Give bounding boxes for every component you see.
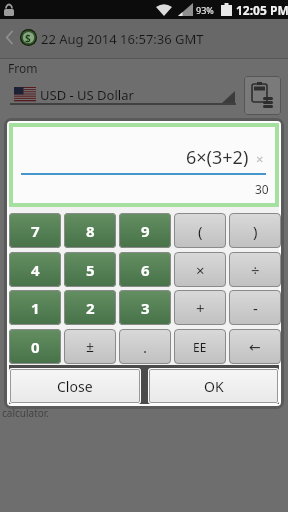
button[interactable]: ( — [174, 213, 226, 248]
button[interactable]: ± — [64, 329, 116, 364]
staticText: - — [253, 298, 258, 318]
button[interactable]: ← — [229, 329, 281, 364]
button[interactable]: Close — [9, 368, 141, 404]
staticText: 22 Aug 2014 16:57:36 GMT — [41, 30, 204, 48]
staticText: × — [196, 260, 205, 280]
staticText: OK — [204, 377, 224, 396]
staticText: ( — [198, 221, 203, 241]
button[interactable]: 6 — [119, 252, 171, 287]
staticText: 0 — [31, 337, 40, 357]
staticText: 12:05 PM — [236, 2, 288, 18]
staticText: × — [256, 150, 264, 168]
button[interactable]: 4 — [9, 252, 61, 287]
button[interactable]: - — [229, 290, 281, 325]
staticText: 6×(3+2) — [186, 145, 249, 169]
button[interactable]: 3 — [119, 290, 171, 325]
button[interactable]: 2 — [64, 290, 116, 325]
button[interactable]: EE — [174, 329, 226, 364]
button[interactable]: . — [119, 329, 171, 364]
staticText: 3 — [141, 298, 150, 318]
staticText: + — [196, 298, 205, 318]
staticText: ← — [249, 339, 261, 355]
button[interactable]: 8 — [64, 213, 116, 248]
button[interactable]: 0 — [9, 329, 61, 364]
button[interactable]: USD - US Dollar — [10, 78, 238, 106]
button[interactable]: OK — [148, 368, 279, 404]
staticText: 4 — [31, 260, 40, 280]
staticText: 30 — [255, 181, 269, 197]
staticText: $ — [25, 31, 31, 45]
button[interactable]: ) — [229, 213, 281, 248]
button[interactable]: $ — [0, 19, 288, 58]
button[interactable]: ÷ — [229, 252, 281, 287]
staticText: ) — [253, 221, 258, 241]
staticText: 8 — [86, 221, 95, 241]
staticText: ± — [86, 337, 95, 356]
staticText: 1 — [31, 298, 40, 318]
staticText: 6 — [141, 260, 150, 280]
button[interactable]: 1 — [9, 290, 61, 325]
button[interactable]: 5 — [64, 252, 116, 287]
staticText: 7 — [31, 221, 40, 241]
staticText: calculator. — [2, 406, 50, 420]
staticText: EE — [193, 339, 207, 355]
button[interactable] — [244, 76, 281, 115]
button[interactable]: + — [174, 290, 226, 325]
staticText: 5 — [86, 260, 95, 280]
staticText: . — [143, 337, 148, 357]
staticText: ÷ — [251, 260, 260, 280]
button[interactable]: × — [174, 252, 226, 287]
staticText: From — [8, 60, 38, 76]
staticText: 9 — [141, 221, 150, 241]
staticText: USD - US Dollar — [40, 86, 134, 104]
staticText: 93% — [196, 4, 214, 16]
button[interactable]: 7 — [9, 213, 61, 248]
button[interactable]: 9 — [119, 213, 171, 248]
staticText: Close — [57, 377, 93, 396]
staticText: 2 — [86, 298, 95, 318]
